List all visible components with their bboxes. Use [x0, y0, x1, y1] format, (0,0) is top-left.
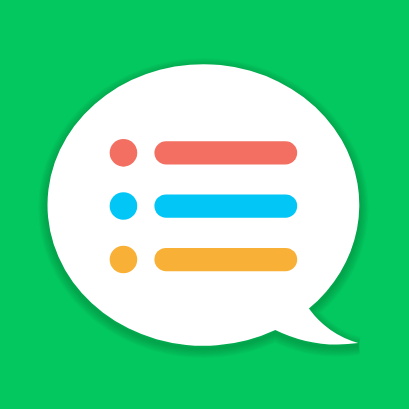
button[interactable]: Open chat list	[0, 0, 409, 409]
